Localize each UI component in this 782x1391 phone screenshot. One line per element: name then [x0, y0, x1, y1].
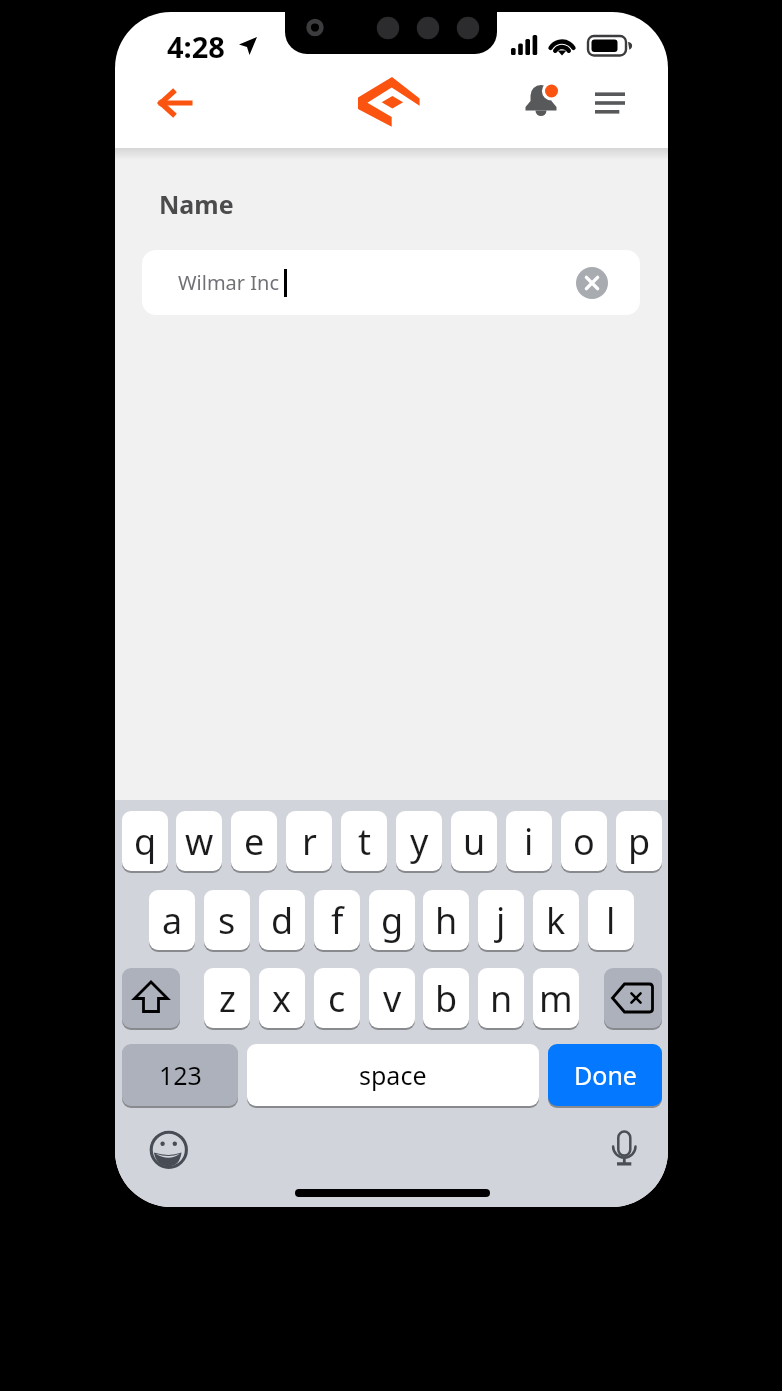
staticText: j: [496, 896, 506, 945]
button[interactable]: c: [314, 968, 360, 1028]
staticText: x: [272, 974, 292, 1023]
staticText: 4:28: [167, 27, 225, 66]
button[interactable]: [583, 82, 637, 124]
button[interactable]: g: [369, 890, 415, 950]
button[interactable]: Wilmar Inc: [142, 250, 640, 315]
button[interactable]: w: [176, 811, 222, 871]
staticText: y: [410, 817, 429, 866]
button[interactable]: s: [204, 890, 250, 950]
button[interactable]: m: [533, 968, 579, 1028]
staticText: t: [358, 817, 371, 866]
button[interactable]: k: [533, 890, 579, 950]
staticText: g: [381, 896, 404, 945]
button[interactable]: x: [259, 968, 305, 1028]
button[interactable]: r: [286, 811, 332, 871]
button[interactable]: v: [369, 968, 415, 1028]
button[interactable]: u: [451, 811, 497, 871]
staticText: f: [331, 896, 344, 945]
button[interactable]: b: [423, 968, 469, 1028]
staticText: s: [218, 896, 236, 945]
staticText: q: [134, 817, 157, 866]
staticText: a: [162, 896, 183, 945]
staticText: k: [546, 896, 566, 945]
staticText: c: [328, 974, 346, 1023]
button[interactable]: [122, 968, 180, 1028]
button[interactable]: h: [423, 890, 469, 950]
button[interactable]: i: [506, 811, 552, 871]
button[interactable]: [605, 1129, 645, 1169]
staticText: d: [271, 896, 294, 945]
staticText: z: [219, 974, 236, 1023]
button[interactable]: 123: [122, 1044, 238, 1106]
button[interactable]: q: [122, 811, 168, 871]
button[interactable]: y: [396, 811, 442, 871]
staticText: 123: [159, 1058, 202, 1092]
staticText: v: [383, 974, 402, 1023]
staticText: Done: [574, 1058, 637, 1092]
staticText: m: [539, 974, 573, 1023]
button[interactable]: n: [478, 968, 524, 1028]
staticText: e: [244, 817, 265, 866]
button[interactable]: z: [204, 968, 250, 1028]
staticText: w: [185, 817, 214, 866]
button[interactable]: a: [149, 890, 195, 950]
staticText: p: [628, 817, 651, 866]
staticText: h: [435, 896, 458, 945]
button[interactable]: [517, 76, 569, 126]
staticText: b: [435, 974, 458, 1023]
button[interactable]: t: [341, 811, 387, 871]
button[interactable]: [153, 84, 199, 122]
staticText: u: [463, 817, 486, 866]
button[interactable]: [576, 267, 608, 299]
staticText: Wilmar Inc: [178, 269, 280, 296]
staticText: o: [573, 817, 595, 866]
button[interactable]: j: [478, 890, 524, 950]
button[interactable]: f: [314, 890, 360, 950]
button[interactable]: [604, 968, 662, 1028]
button[interactable]: l: [588, 890, 634, 950]
staticText: i: [524, 817, 534, 866]
button[interactable]: Done: [548, 1044, 662, 1106]
button[interactable]: o: [561, 811, 607, 871]
staticText: n: [490, 974, 513, 1023]
staticText: space: [359, 1058, 427, 1092]
button[interactable]: [148, 1128, 190, 1170]
button[interactable]: e: [231, 811, 277, 871]
button[interactable]: d: [259, 890, 305, 950]
staticText: l: [606, 896, 616, 945]
button[interactable]: p: [616, 811, 662, 871]
staticText: Name: [159, 187, 234, 221]
button[interactable]: space: [247, 1044, 539, 1106]
staticText: r: [302, 817, 317, 866]
